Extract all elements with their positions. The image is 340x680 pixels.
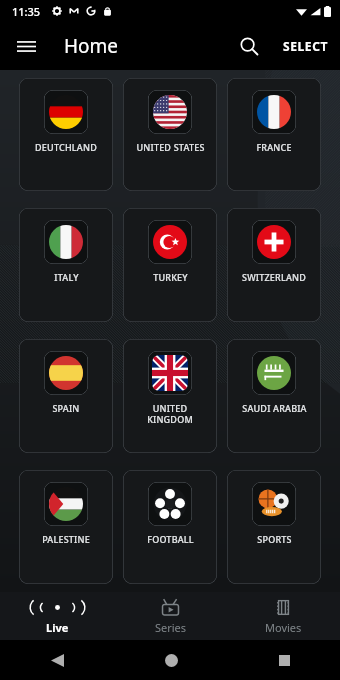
button[interactable]: SWITZERLAND [227,208,321,322]
staticText: SAUDI ARABIA [242,402,307,414]
staticText: ITALY [54,271,79,283]
staticText: FOOTBALL [147,533,194,545]
button[interactable]: TURKEY [123,208,217,322]
button[interactable]: SAUDI ARABIA [227,339,321,453]
staticText: PALESTINE [42,533,90,545]
staticText: 11:35 [12,4,41,19]
staticText: SWITZERLAND [242,271,306,283]
button[interactable]: Back [40,643,74,677]
staticText: Live [46,620,69,635]
staticText: SPAIN [52,402,80,414]
staticText: FRANCE [256,141,292,153]
button[interactable]: Movies [227,592,340,640]
staticText: Home [64,33,119,59]
button[interactable]: Live [0,592,114,640]
staticText: TURKEY [153,271,188,283]
button[interactable]: SPORTS [227,470,321,584]
button[interactable]: Home [154,643,188,677]
button[interactable]: FOOTBALL [123,470,217,584]
button[interactable]: UNITED STATES [123,78,217,191]
staticText: Series [155,620,187,635]
button[interactable]: SPAIN [19,339,113,453]
button[interactable]: FRANCE [227,78,321,191]
button[interactable]: Search [227,24,271,68]
button[interactable]: SELECT [271,28,340,64]
button[interactable]: UNITED KINGDOM [123,339,217,453]
button[interactable]: ITALY [19,208,113,322]
staticText: UNITED STATES [136,141,205,153]
button[interactable]: DEUTCHLAND [19,78,113,191]
button[interactable]: Recents [267,643,301,677]
staticText: Movies [265,620,302,635]
staticText: SPORTS [257,533,292,545]
button[interactable]: Series [114,592,227,640]
button[interactable]: Menu [6,26,46,66]
staticText: SELECT [283,38,328,54]
staticText: DEUTCHLAND [35,141,97,153]
staticText: UNITED KINGDOM [147,402,193,425]
button[interactable]: PALESTINE [19,470,113,584]
